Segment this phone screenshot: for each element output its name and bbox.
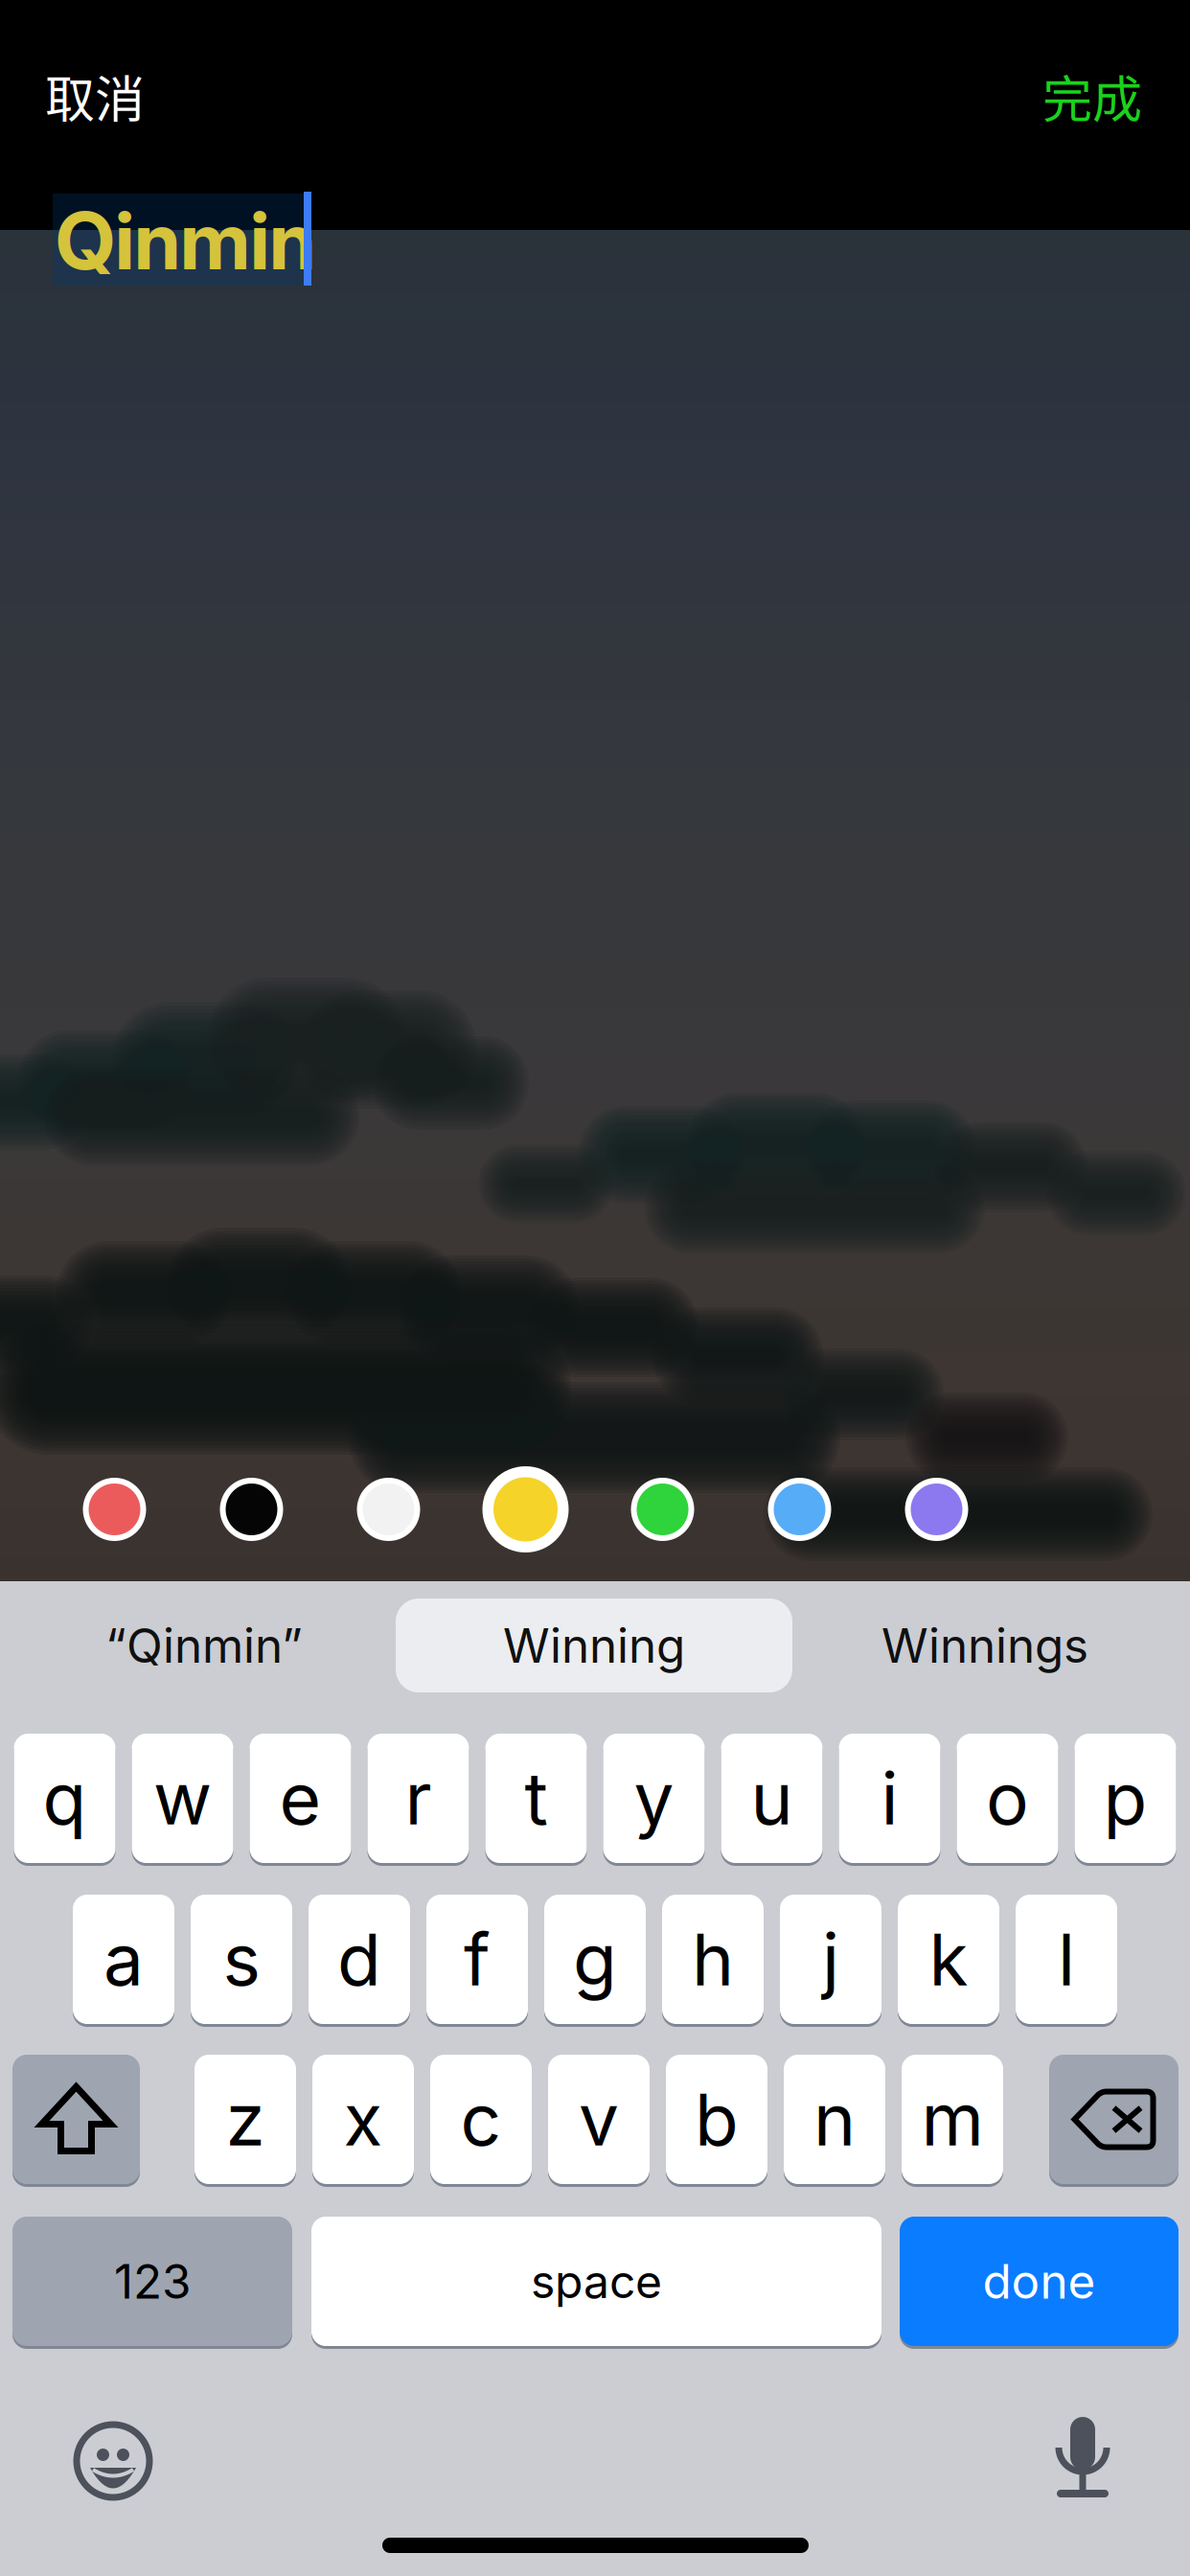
button[interactable]: space <box>311 2217 881 2346</box>
button[interactable]: n <box>784 2055 885 2184</box>
button[interactable]: Color <box>457 1457 594 1562</box>
button[interactable]: Winnings <box>792 1598 1178 1692</box>
button[interactable]: “Qinmin” <box>12 1598 396 1692</box>
button[interactable]: a <box>73 1895 174 2024</box>
button[interactable]: c <box>430 2055 532 2184</box>
staticText: r <box>405 1755 432 1842</box>
button[interactable]: Shift <box>12 2055 140 2184</box>
staticText: e <box>279 1755 321 1842</box>
staticText: o <box>986 1755 1029 1842</box>
button[interactable]: p <box>1075 1734 1176 1863</box>
staticText: u <box>751 1755 793 1842</box>
staticText: h <box>692 1916 734 2003</box>
button[interactable]: Delete <box>1049 2055 1179 2184</box>
button[interactable]: q <box>14 1734 115 1863</box>
staticText: done <box>983 2253 1096 2310</box>
staticText: 取消 <box>45 60 145 132</box>
staticText: a <box>103 1916 144 2003</box>
staticText: p <box>1103 1755 1147 1842</box>
button[interactable]: Winning <box>396 1598 792 1692</box>
button[interactable]: t <box>485 1734 587 1863</box>
button[interactable]: Color <box>594 1457 731 1562</box>
staticText: Winning <box>503 1617 685 1674</box>
staticText: w <box>153 1755 212 1842</box>
button[interactable]: Color <box>868 1457 1005 1562</box>
button[interactable]: done <box>900 2217 1179 2346</box>
staticText: s <box>223 1916 260 2003</box>
staticText: space <box>531 2254 662 2309</box>
button[interactable]: s <box>191 1895 292 2024</box>
staticText: l <box>1058 1916 1075 2003</box>
staticText: m <box>921 2076 984 2163</box>
button[interactable]: g <box>544 1895 646 2024</box>
staticText: Winnings <box>881 1617 1088 1674</box>
button[interactable]: m <box>902 2055 1003 2184</box>
button[interactable]: w <box>132 1734 233 1863</box>
staticText: z <box>226 2076 265 2163</box>
staticText: t <box>525 1755 548 1842</box>
button[interactable]: Dictation <box>1044 2417 1121 2499</box>
button[interactable]: o <box>957 1734 1058 1863</box>
staticText: 123 <box>114 2253 191 2310</box>
button[interactable]: Color <box>183 1457 320 1562</box>
button[interactable]: i <box>839 1734 940 1863</box>
button[interactable]: f <box>426 1895 528 2024</box>
button[interactable]: d <box>309 1895 410 2024</box>
button[interactable]: z <box>195 2055 296 2184</box>
staticText: b <box>695 2076 739 2163</box>
staticText: g <box>573 1916 617 2003</box>
button[interactable]: r <box>367 1734 469 1863</box>
button[interactable]: Emoji <box>75 2423 151 2499</box>
button[interactable]: e <box>250 1734 351 1863</box>
button[interactable]: y <box>603 1734 705 1863</box>
staticText: j <box>822 1916 839 2003</box>
staticText: Qinmin <box>56 193 315 288</box>
button[interactable]: Color <box>46 1457 183 1562</box>
button[interactable]: l <box>1016 1895 1117 2024</box>
staticText: f <box>464 1916 491 2003</box>
staticText: x <box>343 2076 383 2163</box>
button[interactable]: h <box>662 1895 764 2024</box>
button[interactable]: u <box>721 1734 823 1863</box>
button[interactable]: 完成 <box>931 53 1142 139</box>
staticText: 完成 <box>1042 60 1142 132</box>
staticText: y <box>634 1755 674 1842</box>
button[interactable]: 123 <box>12 2217 292 2346</box>
button[interactable]: Color <box>320 1457 457 1562</box>
button[interactable]: b <box>666 2055 767 2184</box>
staticText: k <box>929 1916 968 2003</box>
button[interactable]: v <box>548 2055 650 2184</box>
button[interactable]: k <box>898 1895 999 2024</box>
button[interactable]: x <box>312 2055 414 2184</box>
staticText: v <box>579 2076 619 2163</box>
staticText: n <box>813 2076 856 2163</box>
button[interactable]: Color <box>731 1457 868 1562</box>
staticText: d <box>337 1916 381 2003</box>
button[interactable]: 取消 <box>45 53 256 139</box>
staticText: i <box>881 1755 898 1842</box>
staticText: “Qinmin” <box>105 1617 303 1674</box>
button[interactable]: j <box>780 1895 881 2024</box>
staticText: q <box>43 1755 87 1842</box>
staticText: c <box>460 2076 502 2163</box>
